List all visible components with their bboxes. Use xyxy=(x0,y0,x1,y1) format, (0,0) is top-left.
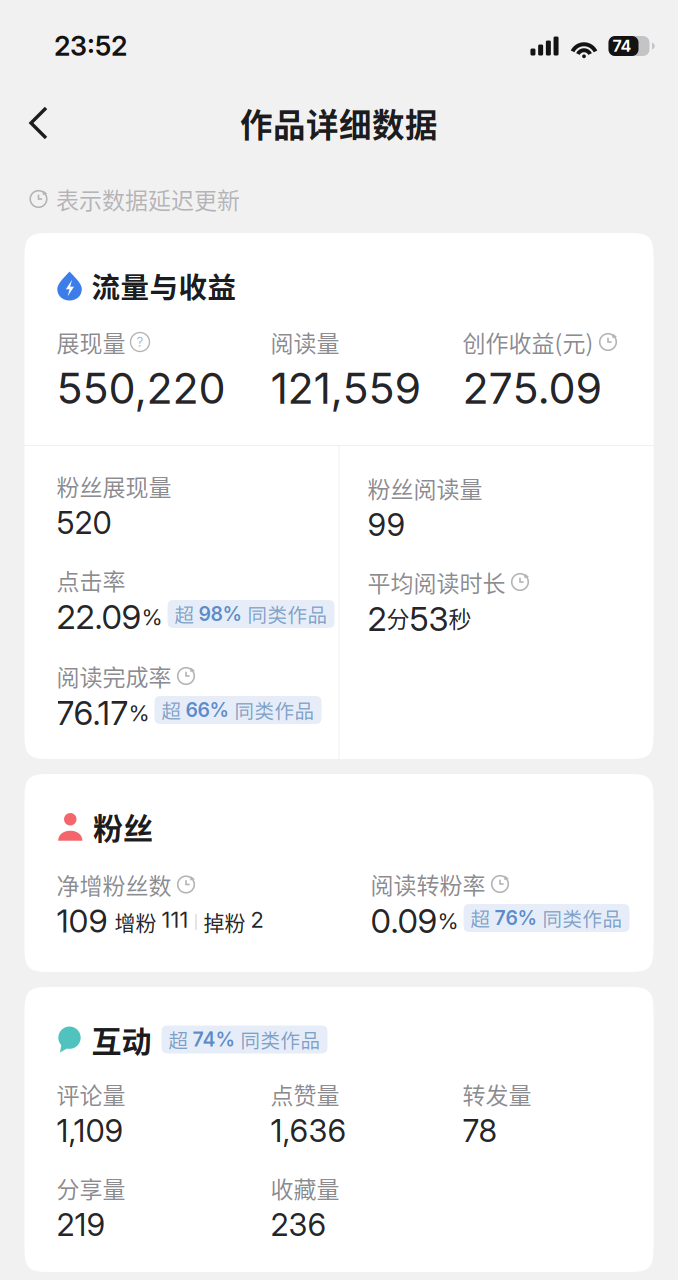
staticText: 评论量 xyxy=(56,1077,125,1111)
staticText: 74 xyxy=(612,36,631,56)
staticText: 76% xyxy=(494,906,537,930)
staticText: 22.09 xyxy=(56,597,141,637)
staticText: 净增粉丝数 xyxy=(56,868,171,901)
staticText: 超 xyxy=(161,696,181,724)
staticText: 流量与收益 xyxy=(92,265,237,306)
staticText: 收藏量 xyxy=(270,1171,339,1205)
staticText: 同类作品 xyxy=(240,1025,320,1054)
staticText: 78 xyxy=(462,1112,497,1149)
staticText: 超 xyxy=(168,1025,188,1054)
staticText: 粉丝阅读量 xyxy=(367,471,482,505)
staticText: 1,109 xyxy=(56,1112,123,1149)
staticText: 同类作品 xyxy=(247,600,327,628)
staticText: 表示数据延迟更新 xyxy=(56,182,240,216)
staticText: 520 xyxy=(56,504,111,541)
staticText: 2 xyxy=(367,599,386,639)
staticText: 创作收益(元) xyxy=(462,325,593,359)
staticText: 展现量 xyxy=(56,325,125,359)
staticText: 超 xyxy=(174,600,194,628)
staticText: 219 xyxy=(56,1206,105,1243)
staticText: 121,559 xyxy=(270,362,421,414)
staticText: 同类作品 xyxy=(234,696,314,724)
staticText: 掉粉 xyxy=(203,906,245,937)
staticText: % xyxy=(128,700,149,727)
staticText: 74% xyxy=(192,1028,235,1051)
staticText: % xyxy=(141,604,162,631)
staticText: 109 xyxy=(56,901,107,940)
staticText: 99 xyxy=(367,506,405,543)
staticText: 点击率 xyxy=(56,563,125,597)
staticText: 分 xyxy=(386,601,409,634)
staticText: 转发量 xyxy=(462,1077,531,1111)
staticText: 76.17 xyxy=(56,693,128,733)
staticText: 275.09 xyxy=(462,362,602,414)
staticText: 分享量 xyxy=(56,1171,125,1205)
staticText: 550,220 xyxy=(56,362,225,414)
staticText: 0.09 xyxy=(370,901,437,941)
staticText: 超 xyxy=(470,904,490,932)
staticText: 236 xyxy=(270,1206,326,1243)
staticText: 作品详细数据 xyxy=(240,99,438,147)
staticText: 平均阅读时长 xyxy=(367,565,505,599)
staticText: 阅读转粉率 xyxy=(370,867,485,901)
staticText: 粉丝 xyxy=(93,805,153,848)
staticText: 2 xyxy=(250,906,263,933)
staticText: 粉丝展现量 xyxy=(56,469,171,503)
staticText: 53 xyxy=(409,599,448,639)
button[interactable]: 返回 xyxy=(0,92,69,154)
staticText: 秒 xyxy=(448,601,471,634)
staticText: 1,636 xyxy=(270,1112,346,1149)
staticText: 增粉 xyxy=(114,906,156,937)
staticText: % xyxy=(437,908,458,935)
staticText: 98% xyxy=(198,602,242,626)
staticText: 互动 xyxy=(91,1018,151,1061)
staticText: ? xyxy=(136,334,143,350)
staticText: 23:52 xyxy=(54,30,127,62)
staticText: 阅读完成率 xyxy=(56,659,171,693)
staticText: 阅读量 xyxy=(270,325,339,359)
staticText: 111 xyxy=(161,906,188,933)
staticText: 点赞量 xyxy=(270,1077,339,1111)
staticText: 66% xyxy=(185,698,229,722)
staticText: 同类作品 xyxy=(542,904,622,932)
